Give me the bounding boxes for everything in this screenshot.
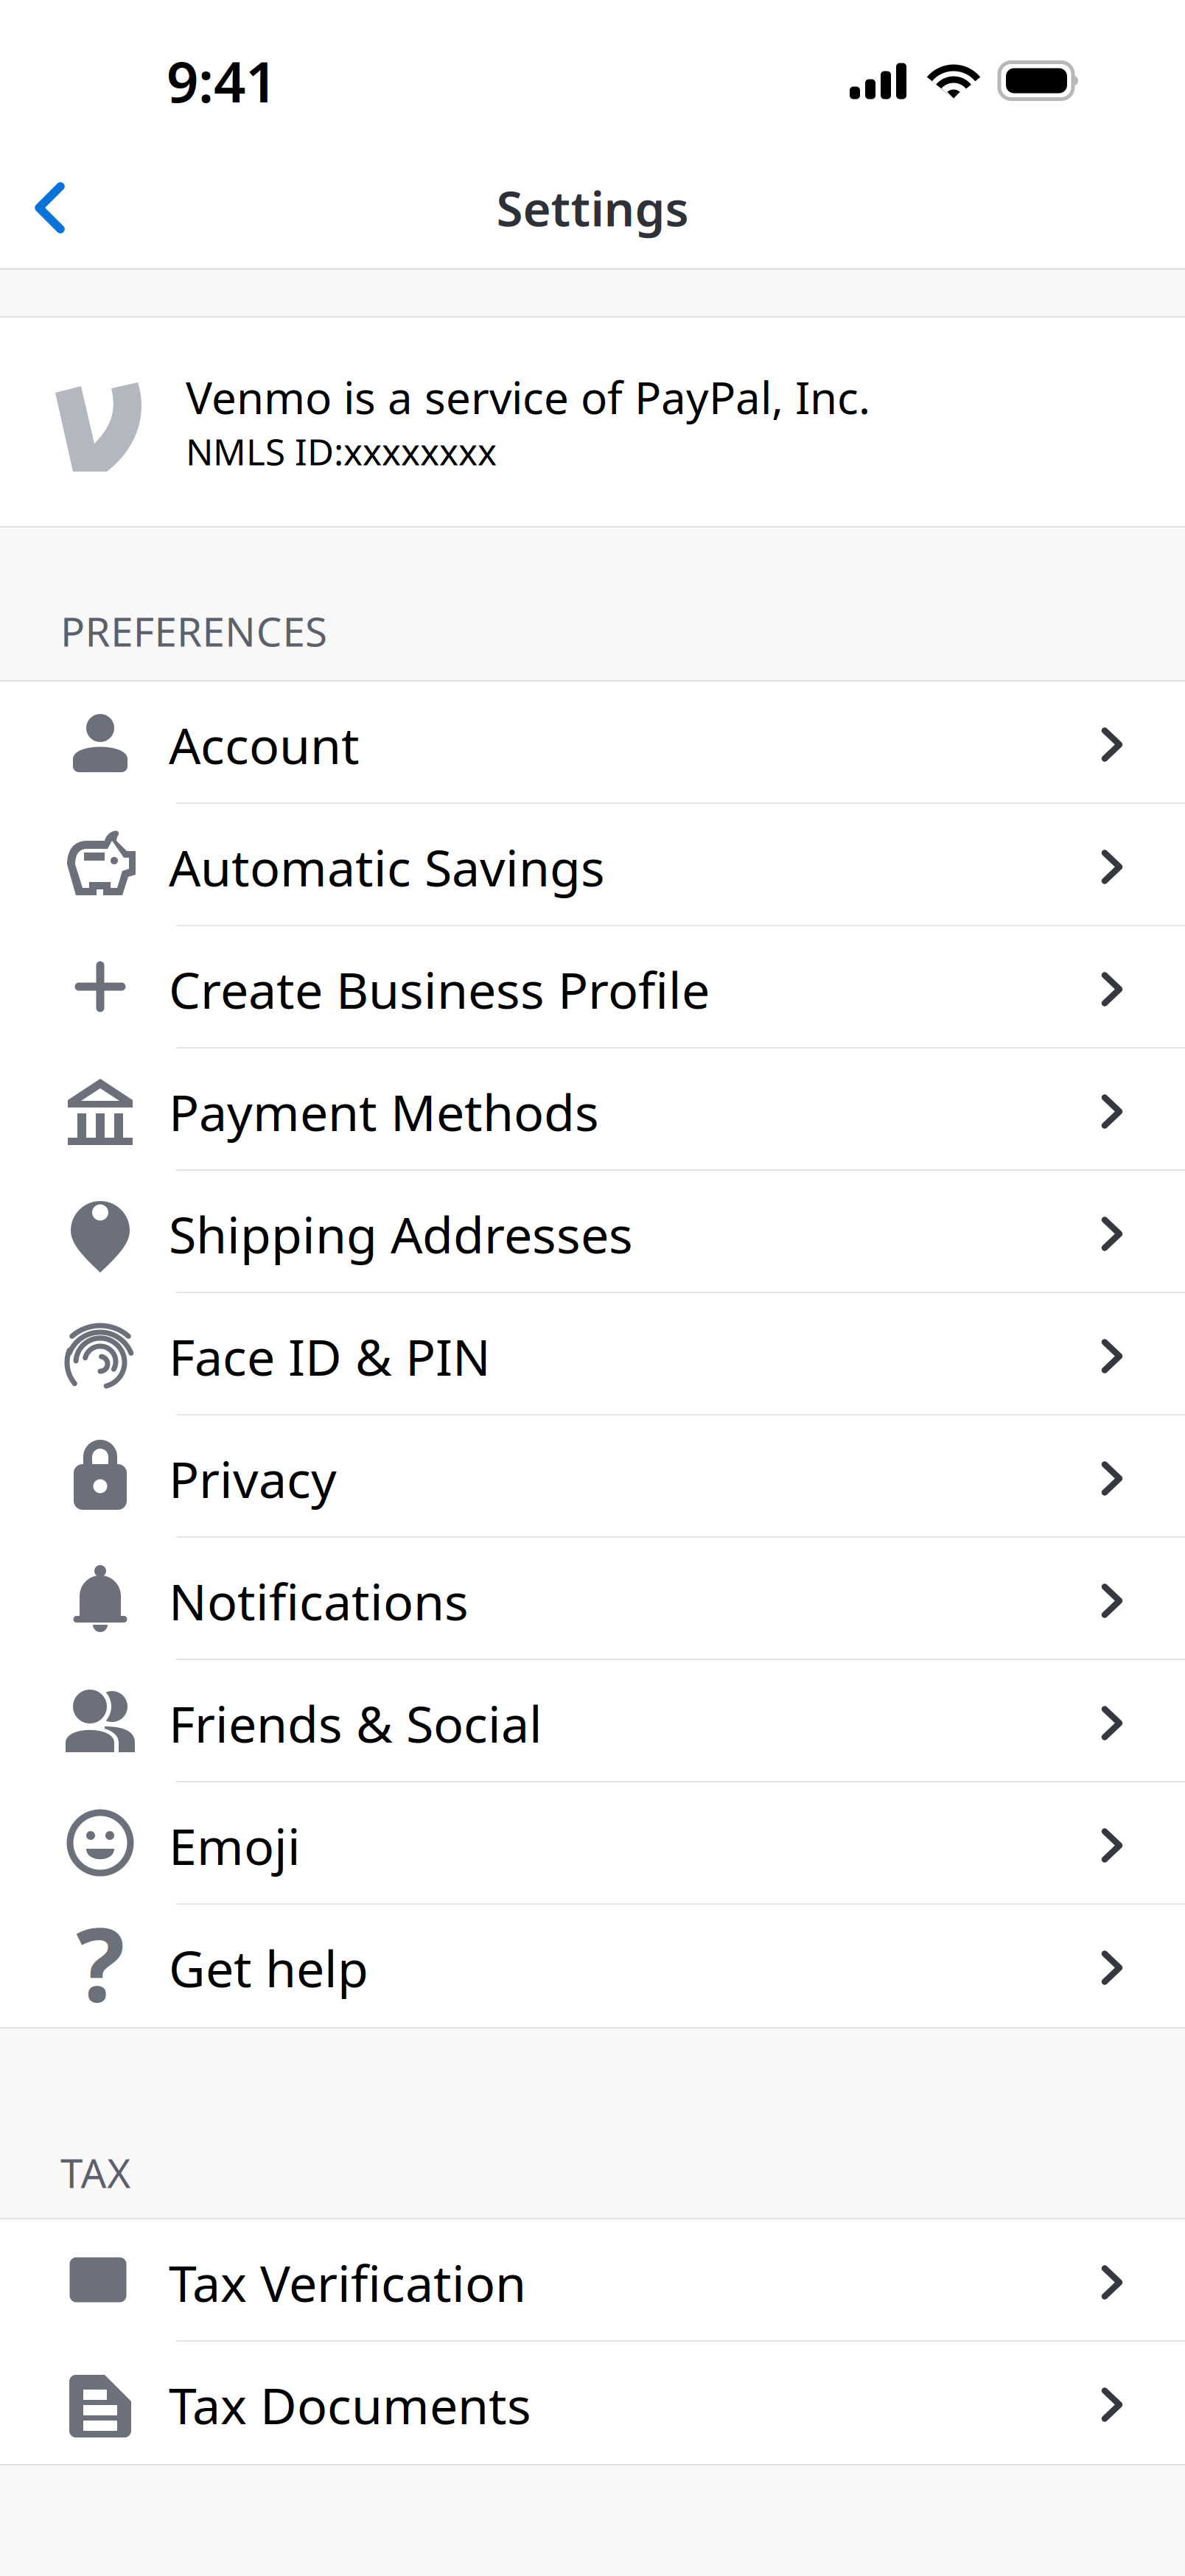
staticText: Venmo is a service of PayPal, Inc. <box>186 368 870 426</box>
button[interactable]: Shipping Addresses <box>0 1171 1185 1293</box>
button[interactable]: Create Business Profile <box>0 926 1185 1049</box>
button[interactable]: ? <box>0 1905 1185 2027</box>
staticText: Automatic Savings <box>169 834 605 900</box>
button[interactable]: Privacy <box>0 1415 1185 1538</box>
staticText: Settings <box>496 176 689 240</box>
staticText: Privacy <box>169 1445 337 1512</box>
button[interactable]: Notifications <box>0 1538 1185 1660</box>
staticText: Shipping Addresses <box>169 1201 633 1267</box>
button[interactable]: Account <box>0 682 1185 804</box>
button[interactable]: Payment Methods <box>0 1049 1185 1171</box>
staticText: Get help <box>169 1934 368 2001</box>
staticText: 9:41 <box>167 43 277 118</box>
staticText: ? <box>76 1894 125 2030</box>
staticText: Tax Documents <box>169 2371 531 2438</box>
staticText: Tax Verification <box>169 2249 526 2316</box>
staticText: Account <box>169 711 360 778</box>
staticText: Create Business Profile <box>169 956 710 1022</box>
button[interactable]: Automatic Savings <box>0 804 1185 926</box>
staticText: Notifications <box>169 1567 469 1634</box>
button[interactable]: Face ID & PIN <box>0 1293 1185 1415</box>
button[interactable]: Back <box>0 147 93 268</box>
staticText: Emoji <box>169 1812 301 1879</box>
button[interactable]: Emoji <box>0 1782 1185 1905</box>
staticText: Friends & Social <box>169 1690 542 1756</box>
button[interactable]: Venmo is a service of PayPal, Inc. <box>0 318 1185 526</box>
staticText: Payment Methods <box>169 1078 599 1145</box>
staticText: Face ID & PIN <box>169 1323 491 1389</box>
staticText: TAX <box>60 2146 131 2199</box>
staticText: PREFERENCES <box>60 604 327 658</box>
staticText: NMLS ID:xxxxxxxx <box>186 427 497 475</box>
button[interactable]: Friends & Social <box>0 1660 1185 1782</box>
button[interactable]: Tax Documents <box>0 2342 1185 2464</box>
button[interactable]: Tax Verification <box>0 2219 1185 2342</box>
